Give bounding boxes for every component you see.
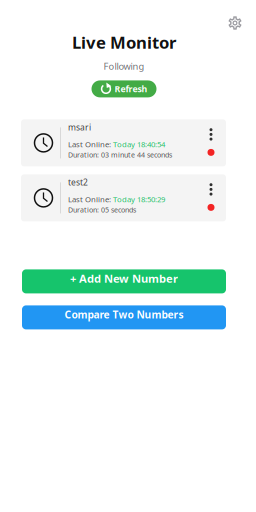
button[interactable]: test2 (21, 174, 226, 221)
staticText: Duration: 05 seconds (68, 205, 136, 214)
button[interactable]: Compare Two Numbers (22, 305, 226, 329)
staticText: Last Online: (68, 194, 113, 204)
staticText: + Add New Number (70, 271, 178, 286)
button[interactable]: + Add New Number (22, 269, 226, 293)
button[interactable]: Settings (223, 11, 247, 35)
staticText: Duration: 03 minute 44 seconds (68, 150, 172, 159)
staticText: Last Online: (68, 139, 113, 149)
staticText: Today 18:50:29 (113, 194, 165, 204)
staticText: Live Monitor (72, 31, 176, 54)
staticText: Following (103, 60, 144, 72)
staticText: Compare Two Numbers (64, 307, 183, 321)
button[interactable]: Refresh (91, 80, 156, 97)
staticText: Refresh (114, 83, 147, 95)
staticText: Today 18:40:54 (113, 139, 165, 149)
button[interactable]: msari (21, 119, 226, 166)
staticText: test2 (68, 176, 88, 188)
staticText: msari (68, 121, 91, 133)
